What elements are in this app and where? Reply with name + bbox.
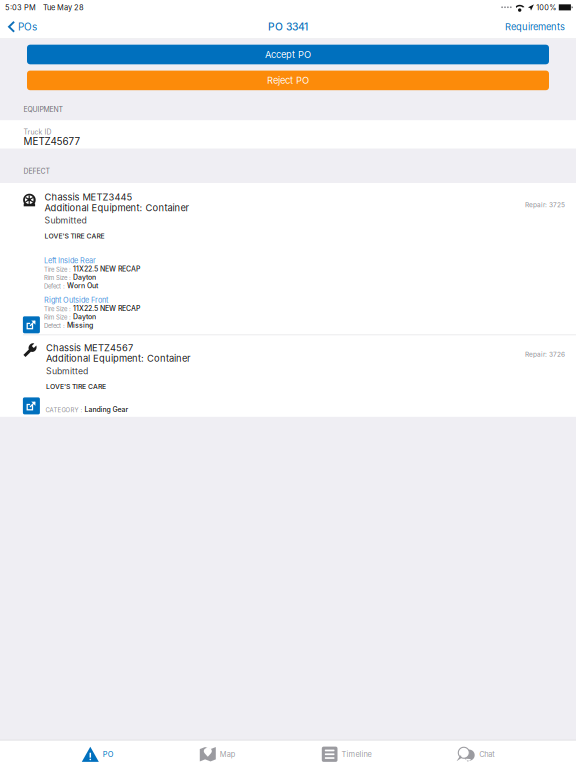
button[interactable]: Reject PO	[27, 71, 549, 90]
staticText: Defect	[44, 283, 61, 290]
staticText: Dayton	[73, 273, 96, 282]
staticText: 5:03 PM	[5, 3, 36, 12]
button[interactable]: Timeline	[314, 741, 379, 767]
staticText: Dayton	[73, 313, 96, 321]
staticText: PO 3341	[268, 20, 308, 33]
staticText: :	[67, 305, 73, 313]
staticText: Rim Size	[44, 274, 67, 282]
staticText: Tue May 28	[43, 3, 84, 12]
staticText: Timeline	[341, 750, 371, 759]
staticText: Left Inside Rear	[44, 256, 96, 265]
button[interactable]: Requirements	[494, 15, 576, 38]
staticText: Missing	[67, 321, 93, 329]
button[interactable]: PO	[74, 741, 122, 767]
staticText: :	[61, 283, 67, 290]
button[interactable]: Accept PO	[27, 45, 549, 64]
staticText: METZ45677	[24, 135, 81, 147]
button[interactable]: Open defect details	[23, 316, 40, 333]
staticText: POs	[18, 21, 37, 33]
button[interactable]: Open defect details	[23, 397, 40, 414]
staticText: DEFECT	[24, 167, 50, 175]
staticText: Chat	[479, 750, 494, 759]
staticText: Tire Size	[44, 266, 67, 273]
staticText: Accept PO	[265, 49, 311, 60]
button[interactable]: Map	[192, 741, 244, 767]
staticText: LOVE'S TIRE CARE	[46, 382, 106, 391]
staticText: EQUIPMENT	[24, 105, 63, 114]
button[interactable]: POs	[0, 15, 43, 38]
staticText: Requirements	[505, 21, 565, 32]
staticText: Defect	[44, 322, 61, 329]
staticText: 11X22.5 NEW RECAP	[73, 304, 140, 313]
staticText: Submitted	[44, 215, 86, 226]
staticText: Repair: 3725	[525, 201, 565, 209]
staticText: Tire Size	[44, 305, 67, 313]
staticText: Map	[220, 750, 236, 759]
staticText: CATEGORY	[45, 406, 78, 414]
staticText: 11X22.5 NEW RECAP	[73, 265, 140, 273]
staticText: :	[61, 322, 67, 329]
staticText: Repair: 3726	[525, 350, 565, 358]
staticText: Worn Out	[67, 281, 98, 290]
staticText: Chassis METZ4567	[46, 342, 133, 353]
staticText: Chassis METZ3445	[44, 192, 132, 203]
staticText: Reject PO	[267, 75, 309, 86]
staticText: LOVE'S TIRE CARE	[44, 232, 104, 240]
staticText: :	[67, 274, 73, 282]
staticText: Rim Size	[44, 314, 67, 321]
staticText: Additional Equipment: Container	[46, 353, 191, 364]
staticText: :	[78, 406, 84, 414]
staticText: Landing Gear	[84, 405, 128, 414]
staticText: Right Outside Front	[44, 296, 108, 305]
staticText: Submitted	[46, 366, 88, 376]
button[interactable]: Chat	[449, 741, 502, 767]
staticText: :	[67, 314, 73, 321]
staticText: Additional Equipment: Container	[44, 202, 189, 213]
staticText: :	[67, 266, 73, 273]
staticText: 100%	[536, 3, 556, 12]
staticText: Truck ID	[24, 128, 52, 136]
staticText: PO	[103, 750, 114, 759]
